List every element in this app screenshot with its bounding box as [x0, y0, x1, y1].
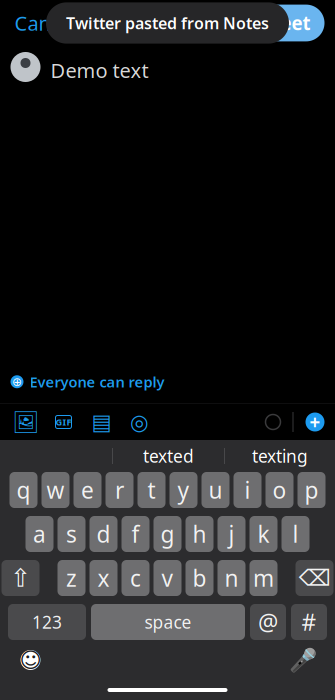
button[interactable]: b: [185, 560, 213, 596]
button[interactable]: j: [217, 516, 245, 552]
button[interactable]: Add poll: [86, 407, 116, 437]
staticText: g: [160, 519, 174, 549]
button[interactable]: texting: [225, 441, 335, 471]
staticText: +: [309, 410, 320, 434]
staticText: GIF: [55, 416, 71, 428]
button[interactable]: a: [25, 516, 53, 552]
staticText: n: [224, 563, 238, 593]
staticText: m: [253, 563, 274, 593]
button[interactable]: l: [281, 516, 309, 552]
button[interactable]: e: [73, 472, 101, 508]
staticText: @: [258, 607, 278, 637]
staticText: e: [81, 475, 94, 505]
button[interactable]: Add location: [124, 407, 154, 437]
staticText: texted: [143, 444, 194, 467]
button[interactable]: t: [137, 472, 165, 508]
staticText: Everyone can reply: [29, 372, 164, 391]
staticText: ⇧: [10, 564, 31, 592]
button[interactable]: z: [57, 560, 85, 596]
button[interactable]: 123: [8, 604, 86, 640]
staticText: Cancel: [14, 10, 76, 36]
staticText: i: [244, 475, 250, 505]
staticText: o: [272, 475, 286, 505]
staticText: ◎: [130, 410, 149, 434]
staticText: w: [46, 475, 64, 505]
staticText: s: [66, 519, 77, 549]
button[interactable]: n: [217, 560, 245, 596]
staticText: t: [147, 475, 155, 505]
staticText: l: [292, 519, 298, 549]
staticText: z: [66, 563, 77, 593]
staticText: ▤: [91, 410, 111, 434]
staticText: j: [228, 519, 234, 549]
button[interactable]: v: [153, 560, 181, 596]
staticText: Tweet: [254, 11, 310, 35]
staticText: Twitter pasted from Notes: [66, 12, 269, 34]
button[interactable]: ⊕: [10, 368, 164, 395]
button[interactable]: w: [41, 472, 69, 508]
button[interactable]: y: [169, 472, 197, 508]
staticText: v: [161, 563, 173, 593]
button[interactable]: Cancel: [10, 4, 80, 42]
button[interactable]: f: [121, 516, 149, 552]
staticText: c: [130, 563, 141, 593]
staticText: texting: [252, 444, 308, 467]
button[interactable]: Dictation: [290, 648, 314, 672]
button[interactable]: r: [105, 472, 133, 508]
staticText: b: [192, 563, 206, 593]
button[interactable]: Delete: [295, 560, 333, 596]
staticText: 🖼: [12, 410, 39, 434]
button[interactable]: texted: [113, 441, 224, 471]
staticText: ☺: [19, 648, 41, 672]
button[interactable]: p: [297, 472, 325, 508]
staticText: f: [131, 519, 139, 549]
staticText: space: [144, 610, 191, 633]
button[interactable]: c: [121, 560, 149, 596]
button[interactable]: g: [153, 516, 181, 552]
button[interactable]: Add photo: [10, 407, 40, 437]
button[interactable]: i: [233, 472, 261, 508]
button[interactable]: d: [89, 516, 117, 552]
staticText: x: [97, 563, 109, 593]
button[interactable]: space: [91, 604, 245, 640]
button[interactable]: Add GIF: [48, 407, 78, 437]
button[interactable]: Emoji: [20, 650, 40, 670]
button[interactable]: o: [265, 472, 293, 508]
staticText: a: [33, 519, 46, 549]
staticText: #: [301, 607, 316, 637]
button[interactable]: h: [185, 516, 213, 552]
button[interactable]: u: [201, 472, 229, 508]
staticText: p: [304, 475, 318, 505]
staticText: 123: [32, 610, 62, 633]
staticText: q: [16, 475, 30, 505]
button[interactable]: s: [57, 516, 85, 552]
staticText: Demo text: [50, 57, 148, 84]
staticText: 🎤: [288, 647, 316, 673]
staticText: r: [115, 475, 124, 505]
button[interactable]: m: [249, 560, 277, 596]
staticText: u: [208, 475, 222, 505]
button[interactable]: Shift: [1, 560, 39, 596]
staticText: k: [257, 519, 269, 549]
staticText: ⊕: [12, 375, 22, 389]
staticText: d: [96, 519, 110, 549]
staticText: y: [177, 475, 189, 505]
button[interactable]: Add tweet: [305, 412, 324, 431]
button[interactable]: x: [89, 560, 117, 596]
staticText: h: [192, 519, 206, 549]
staticText: ⌫: [298, 565, 330, 591]
button[interactable]: k: [249, 516, 277, 552]
button[interactable]: Tweet: [240, 5, 324, 41]
button[interactable]: q: [9, 472, 37, 508]
button[interactable]: #: [291, 604, 327, 640]
button[interactable]: @: [250, 604, 286, 640]
